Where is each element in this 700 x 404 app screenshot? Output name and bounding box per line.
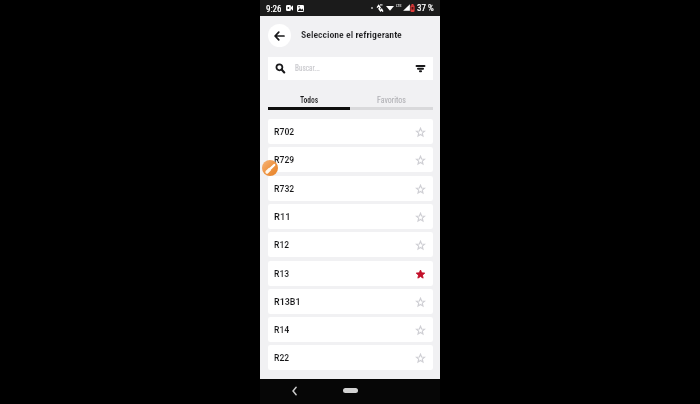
button[interactable]: Favorite R732 [411, 180, 429, 198]
button[interactable]: Favorite R702 [268, 119, 433, 144]
button[interactable]: Favorite R13B1 [268, 289, 433, 314]
button[interactable] [350, 92, 433, 107]
button[interactable]: Favorite R22 [411, 349, 429, 367]
button[interactable]: Favorite R729 [411, 151, 429, 169]
button[interactable] [268, 92, 350, 107]
button[interactable]: Favorite R729 [268, 147, 433, 172]
button[interactable]: Home [343, 388, 358, 393]
button[interactable]: Favorite R13B1 [411, 293, 429, 311]
button[interactable]: Back [268, 24, 291, 47]
staticText: 37 % [417, 3, 434, 14]
button[interactable]: Back [288, 384, 302, 398]
button[interactable]: Favorite R22 [268, 345, 433, 370]
button[interactable]: Favorite R12 [268, 232, 433, 257]
button[interactable]: Favorite R14 [268, 317, 433, 342]
button[interactable]: Edit [262, 160, 278, 176]
staticText: 9:26 [266, 4, 282, 15]
button[interactable]: Favorite R732 [268, 176, 433, 201]
button[interactable]: Favorite R14 [411, 321, 429, 339]
button[interactable]: Filter [411, 59, 429, 78]
button[interactable]: Favorite R11 [411, 208, 429, 226]
button[interactable]: Favorite R13 [411, 265, 429, 283]
staticText: LTE [396, 3, 402, 8]
button[interactable]: Favorite R13 [268, 261, 433, 286]
button[interactable]: Favorite R702 [411, 123, 429, 141]
button[interactable]: Filter [268, 57, 433, 80]
button[interactable]: Favorite R11 [268, 204, 433, 229]
button[interactable]: Favorite R12 [411, 236, 429, 254]
